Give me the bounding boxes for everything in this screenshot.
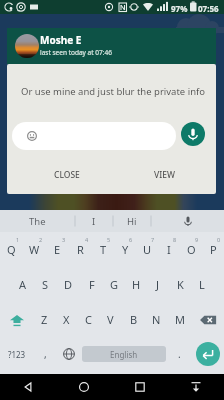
button[interactable]: M — [168, 302, 191, 337]
button[interactable]: Backspace — [191, 302, 224, 337]
staticText: P — [210, 242, 217, 257]
button[interactable]: Q — [0, 232, 23, 267]
button[interactable]: A — [11, 267, 34, 302]
staticText: F — [89, 277, 95, 292]
button[interactable]: I — [75, 210, 113, 232]
button[interactable]: W — [23, 232, 46, 267]
button[interactable]: U — [136, 232, 158, 267]
staticText: R — [77, 242, 84, 257]
staticText: W — [29, 242, 40, 257]
staticText: I — [92, 215, 96, 228]
button[interactable]: Enter — [196, 342, 220, 366]
staticText: 2 — [39, 236, 43, 243]
staticText: 7 — [151, 236, 155, 243]
staticText: 5 — [107, 236, 111, 243]
button[interactable]: Recent apps — [112, 374, 168, 400]
staticText: , — [44, 347, 47, 361]
button[interactable]: O — [180, 232, 202, 267]
staticText: O — [187, 242, 196, 257]
staticText: K — [177, 277, 184, 292]
staticText: Y — [122, 242, 129, 257]
staticText: 8 — [173, 236, 177, 243]
button[interactable]: . — [167, 337, 191, 371]
staticText: L — [199, 277, 205, 292]
staticText: N — [152, 312, 161, 327]
button[interactable]: Shift — [0, 302, 33, 337]
button[interactable]: Change keyboard language — [57, 337, 81, 371]
staticText: X — [63, 312, 70, 327]
button[interactable]: Home — [56, 374, 112, 400]
staticText: 97% — [171, 3, 188, 14]
staticText: VIEW — [154, 169, 175, 181]
staticText: . — [178, 347, 181, 361]
button[interactable]: Hi — [113, 210, 151, 232]
button[interactable]: Y — [114, 232, 136, 267]
button[interactable]: E — [46, 232, 69, 267]
staticText: Moshe E — [40, 33, 82, 47]
staticText: U — [143, 242, 152, 257]
button[interactable]: English — [82, 346, 166, 362]
staticText: V — [107, 312, 114, 327]
staticText: last seen today at 07:46 — [40, 48, 112, 57]
button[interactable]: Record voice message — [181, 122, 205, 146]
button[interactable]: K — [169, 267, 191, 302]
staticText: Or use mine and just blur the private in… — [21, 85, 206, 98]
staticText: Z — [41, 312, 48, 327]
staticText: 9 — [195, 236, 199, 243]
staticText: Q — [7, 242, 16, 257]
button[interactable]: G — [103, 267, 125, 302]
staticText: ?123 — [8, 349, 26, 360]
staticText: 0 — [217, 236, 221, 243]
button[interactable]: Voice input — [151, 210, 224, 232]
staticText: 1 — [16, 236, 20, 243]
staticText: I — [167, 242, 171, 257]
button[interactable]: S — [34, 267, 57, 302]
button[interactable]: CLOSE — [44, 164, 89, 186]
button[interactable]: N — [145, 302, 168, 337]
button[interactable]: H — [125, 267, 147, 302]
staticText: 4 — [85, 236, 89, 243]
staticText: C — [85, 312, 92, 327]
staticText: A — [19, 277, 27, 292]
button[interactable]: ?123 — [0, 337, 33, 371]
staticText: B — [130, 312, 138, 327]
staticText: 6 — [129, 236, 133, 243]
staticText: 3 — [62, 236, 66, 243]
button[interactable]: Z — [33, 302, 55, 337]
staticText: T — [100, 242, 107, 257]
staticText: CLOSE — [54, 169, 80, 181]
staticText: M — [175, 312, 185, 327]
button[interactable]: C — [77, 302, 99, 337]
staticText: D — [64, 277, 73, 292]
staticText: G — [110, 277, 119, 292]
button[interactable]: Back — [0, 374, 56, 400]
staticText: J — [156, 277, 160, 292]
button[interactable]: V — [99, 302, 122, 337]
staticText: English — [110, 349, 138, 360]
staticText: H — [132, 277, 141, 292]
button[interactable]: , — [33, 337, 57, 371]
button[interactable]: The — [0, 210, 75, 232]
button[interactable]: B — [122, 302, 145, 337]
button[interactable]: F — [80, 267, 103, 302]
button[interactable]: R — [69, 232, 92, 267]
button[interactable]: I — [158, 232, 180, 267]
staticText: 07:56 — [198, 3, 219, 14]
button[interactable]: P — [202, 232, 224, 267]
button[interactable]: Hide keyboard — [168, 374, 224, 400]
button[interactable]: VIEW — [142, 164, 187, 186]
staticText: E — [54, 242, 61, 257]
button[interactable]: L — [191, 267, 213, 302]
button[interactable]: T — [92, 232, 114, 267]
button[interactable]: X — [55, 302, 77, 337]
staticText: S — [42, 277, 49, 292]
staticText: Hi — [127, 215, 137, 228]
button[interactable] — [12, 122, 176, 150]
button[interactable]: D — [57, 267, 80, 302]
button[interactable]: J — [147, 267, 169, 302]
staticText: The — [29, 215, 46, 228]
